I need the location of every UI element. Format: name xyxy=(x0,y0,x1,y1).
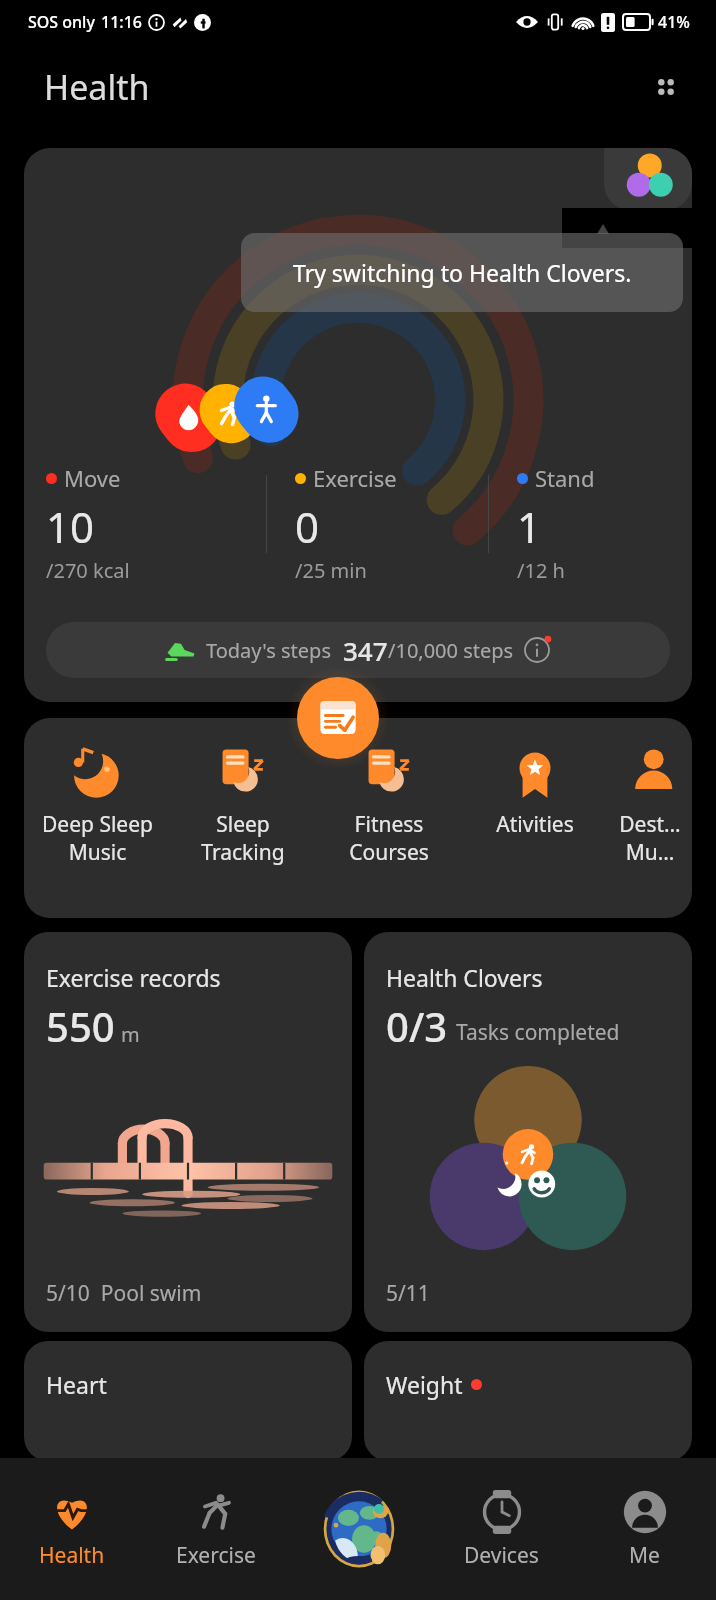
button[interactable]: Health xyxy=(0,1458,144,1600)
button[interactable]: Me xyxy=(573,1458,716,1600)
staticText: Sleep Tracking xyxy=(201,810,285,866)
staticText: Try switching to Health Clovers. xyxy=(293,257,632,288)
button[interactable]: Switch to Health Clovers xyxy=(596,148,692,210)
staticText: Dest… Mu… xyxy=(619,810,681,866)
staticText: Stand xyxy=(535,463,595,493)
button[interactable]: Devices xyxy=(430,1458,573,1600)
staticText: 10 xyxy=(46,498,95,555)
staticText: Exercise xyxy=(313,463,397,493)
staticText: 1 xyxy=(517,498,542,555)
staticText: Ativities xyxy=(496,810,574,839)
button[interactable]: Add record xyxy=(297,677,379,759)
staticText: Exercise xyxy=(176,1541,256,1570)
button[interactable]: Exercise xyxy=(144,1458,287,1600)
button[interactable]: Earth Day xyxy=(287,1458,430,1600)
button[interactable]: Move xyxy=(24,148,692,702)
staticText: Health xyxy=(44,64,150,110)
staticText: m xyxy=(121,1021,140,1048)
staticText: 5/11 xyxy=(386,1279,430,1308)
staticText: 0 xyxy=(295,498,320,555)
staticText: Exercise records xyxy=(46,962,221,993)
staticText: Health Clovers xyxy=(386,962,543,993)
staticText: Deep Sleep Music xyxy=(42,810,153,866)
staticText: SOS only xyxy=(28,11,95,33)
staticText: Weight xyxy=(386,1369,463,1400)
button[interactable]: Today's steps xyxy=(46,622,670,678)
staticText: Move xyxy=(64,463,121,493)
staticText: 0/3 xyxy=(386,999,448,1053)
button[interactable]: Exercise records xyxy=(24,932,352,1332)
staticText: 550 xyxy=(46,999,115,1053)
staticText: /270 kcal xyxy=(46,557,130,584)
button[interactable]: Ativities xyxy=(462,742,608,918)
staticText: /12 h xyxy=(517,557,565,584)
staticText: /10,000 steps xyxy=(388,637,514,664)
button[interactable]: Heart xyxy=(24,1341,352,1461)
button[interactable]: More options xyxy=(644,65,688,109)
button[interactable]: Deep Sleep Music xyxy=(24,742,170,918)
staticText: Me xyxy=(629,1541,660,1570)
staticText: 347 xyxy=(343,633,388,668)
button[interactable]: Dest… Mu… xyxy=(608,742,692,918)
staticText: Heart xyxy=(46,1369,107,1400)
staticText: 41% xyxy=(658,11,690,33)
staticText: Health xyxy=(39,1541,105,1570)
staticText: 5/10 Pool swim xyxy=(46,1279,202,1308)
staticText: Today's steps xyxy=(206,637,331,664)
staticText: Tasks completed xyxy=(456,1018,620,1047)
staticText: 11:16 xyxy=(101,11,142,33)
button[interactable]: Health Clovers xyxy=(364,932,692,1332)
button[interactable]: Weight xyxy=(364,1341,692,1461)
button[interactable]: Sleep Tracking xyxy=(170,742,316,918)
staticText: Fitness Courses xyxy=(349,810,429,866)
button[interactable]: Fitness Courses xyxy=(316,742,462,918)
staticText: Devices xyxy=(464,1541,539,1570)
staticText: /25 min xyxy=(295,557,367,584)
